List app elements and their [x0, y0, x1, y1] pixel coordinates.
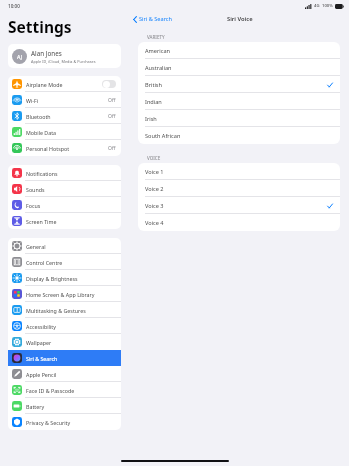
button[interactable]: Australian	[138, 59, 340, 76]
staticText: Off	[108, 113, 116, 120]
button[interactable]: Screen Time	[8, 213, 121, 229]
button[interactable]: Focus	[8, 197, 121, 213]
staticText: Siri & Search	[139, 15, 172, 23]
staticText: Alan Jones	[31, 49, 62, 58]
staticText: Voice 3	[145, 202, 327, 210]
staticText: Voice 4	[145, 219, 333, 227]
button[interactable]: Voice 4	[138, 214, 340, 231]
staticText: Face ID & Passcode	[26, 387, 116, 394]
staticText: Mobile Data	[26, 129, 116, 136]
staticText: South African	[145, 132, 333, 140]
staticText: Wallpaper	[26, 339, 116, 346]
staticText: Privacy & Security	[26, 419, 116, 426]
staticText: Battery	[26, 403, 116, 410]
staticText: Personal Hotspot	[26, 145, 108, 152]
button[interactable]: Privacy & Security	[8, 414, 121, 430]
button[interactable]: Siri & Search	[133, 15, 172, 23]
staticText: 4G	[314, 3, 320, 9]
staticText: Multitasking & Gestures	[26, 307, 116, 314]
button[interactable]: British	[138, 76, 340, 93]
button[interactable]: Bluetooth	[8, 108, 121, 124]
staticText: Sounds	[26, 186, 116, 193]
button[interactable]: Wallpaper	[8, 334, 121, 350]
button[interactable]: Mobile Data	[8, 124, 121, 140]
staticText: VOICE	[147, 155, 161, 161]
staticText: Airplane Mode	[26, 81, 102, 88]
button[interactable]: Control Centre	[8, 254, 121, 270]
button[interactable]: South African	[138, 127, 340, 144]
button[interactable]: Airplane Mode	[8, 76, 121, 92]
staticText: Indian	[145, 98, 333, 106]
staticText: General	[26, 243, 116, 250]
button[interactable]: Home Screen & App Library	[8, 286, 121, 302]
button[interactable]: Voice 3	[138, 197, 340, 214]
button[interactable]: Indian	[138, 93, 340, 110]
button[interactable]: Wi-Fi	[8, 92, 121, 108]
staticText: Voice 1	[145, 168, 333, 176]
button[interactable]: General	[8, 238, 121, 254]
button[interactable]: American	[138, 42, 340, 59]
button[interactable]: Multitasking & Gestures	[8, 302, 121, 318]
staticText: Voice 2	[145, 185, 333, 193]
button[interactable]: Siri & Search	[8, 350, 121, 366]
staticText: 100%	[322, 3, 333, 9]
staticText: Off	[108, 97, 116, 104]
staticText: Australian	[145, 64, 333, 72]
staticText: Screen Time	[26, 218, 116, 225]
staticText: Apple ID, iCloud, Media & Purchases	[31, 59, 96, 64]
button[interactable]: Notifications	[8, 165, 121, 181]
staticText: Home Screen & App Library	[26, 291, 116, 298]
staticText: Siri Voice	[227, 15, 253, 23]
staticText: Accessibility	[26, 323, 116, 330]
staticText: Wi-Fi	[26, 97, 108, 104]
button[interactable]: Battery	[8, 398, 121, 414]
staticText: British	[145, 81, 327, 89]
staticText: Notifications	[26, 170, 116, 177]
button[interactable]: Apple Pencil	[8, 366, 121, 382]
button[interactable]: Sounds	[8, 181, 121, 197]
staticText: Settings	[8, 16, 72, 37]
button[interactable]: Irish	[138, 110, 340, 127]
staticText: Irish	[145, 115, 333, 123]
staticText: Apple Pencil	[26, 371, 116, 378]
staticText: Bluetooth	[26, 113, 108, 120]
button[interactable]: Voice 2	[138, 180, 340, 197]
staticText: Off	[108, 145, 116, 152]
button[interactable]: AJ	[8, 44, 121, 68]
button[interactable]: Display & Brightness	[8, 270, 121, 286]
staticText: Display & Brightness	[26, 275, 116, 282]
button[interactable]: Voice 1	[138, 163, 340, 180]
button[interactable]: Face ID & Passcode	[8, 382, 121, 398]
staticText: Siri & Search	[26, 355, 116, 362]
staticText: VARIETY	[147, 34, 165, 40]
staticText: AJ	[17, 53, 23, 60]
button[interactable]: Personal Hotspot	[8, 140, 121, 156]
staticText: Focus	[26, 202, 116, 209]
button[interactable]: Accessibility	[8, 318, 121, 334]
staticText: 10:00	[8, 3, 20, 9]
staticText: Control Centre	[26, 259, 116, 266]
staticText: American	[145, 47, 333, 55]
